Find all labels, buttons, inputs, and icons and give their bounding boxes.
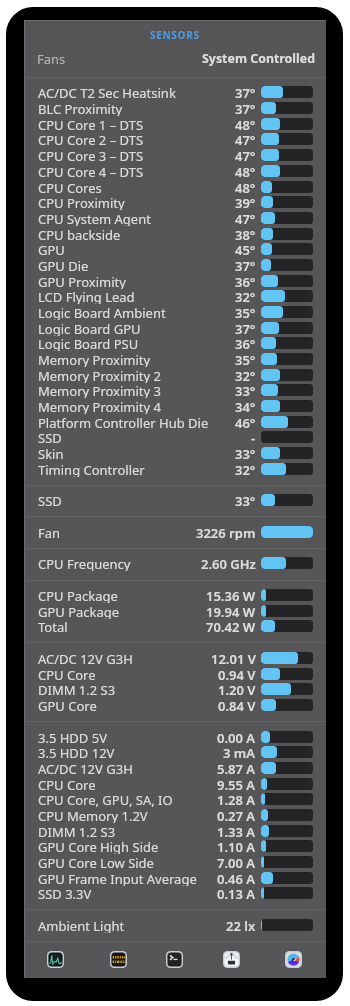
staticText: 15.36 W	[206, 587, 256, 603]
staticText: 39°	[235, 194, 256, 210]
staticText: GPU Die	[38, 257, 89, 273]
staticText: LCD Flying Lead	[38, 288, 135, 304]
button[interactable]: CPU Core 2 – DTS	[24, 131, 326, 147]
button[interactable]: CPU Memory 1.2V	[24, 807, 326, 823]
button[interactable]: Total	[24, 618, 326, 634]
button[interactable]: 3.5 HDD 12V	[24, 744, 326, 760]
staticText: 0.13 A	[217, 885, 256, 901]
button[interactable]: Timing Controller	[24, 461, 326, 477]
button[interactable]: CPU Package	[24, 587, 326, 603]
staticText: CPU Core	[38, 666, 96, 682]
button[interactable]: DIMM 1.2 S3	[24, 823, 326, 839]
staticText: CPU Memory 1.2V	[38, 807, 148, 823]
button[interactable]: BLC Proximity	[24, 100, 326, 116]
button[interactable]: GPU Core Low Side	[24, 854, 326, 870]
button[interactable]: AirPort Utility	[223, 951, 240, 968]
button[interactable]: Browser	[285, 951, 302, 968]
staticText: 47°	[235, 131, 256, 147]
button[interactable]: GPU Core	[24, 697, 326, 713]
staticText: CPU Frequency	[38, 555, 131, 571]
staticText: AC/DC T2 Sec Heatsink	[38, 84, 176, 100]
staticText: 9.55 A	[217, 776, 256, 792]
staticText: Ambient Light	[38, 917, 125, 933]
staticText: DIMM 1.2 S3	[38, 681, 116, 697]
staticText: AC/DC 12V G3H	[38, 650, 133, 666]
button[interactable]: CPU Core 1 – DTS	[24, 116, 326, 132]
button[interactable]: CPU Proximity	[24, 194, 326, 210]
staticText: Total	[38, 618, 68, 634]
button[interactable]: Logic Board GPU	[24, 320, 326, 336]
staticText: Logic Board PSU	[38, 335, 139, 351]
button[interactable]: Logic Board PSU	[24, 335, 326, 351]
staticText: 0.46 A	[217, 870, 256, 886]
staticText: -	[251, 429, 256, 445]
staticText: 0.00 A	[217, 729, 256, 745]
button[interactable]: CPU Core 4 – DTS	[24, 163, 326, 179]
button[interactable]: 3.5 HDD 5V	[24, 729, 326, 745]
button[interactable]: Skin	[24, 445, 326, 461]
button[interactable]: System Monitor	[47, 951, 64, 968]
button[interactable]: CPU backside	[24, 226, 326, 242]
staticText: GPU Package	[38, 603, 120, 619]
button[interactable]: GPU Die	[24, 257, 326, 273]
button[interactable]: GPU Proximity	[24, 273, 326, 289]
button[interactable]: CPU Core 3 – DTS	[24, 147, 326, 163]
staticText: CPU Core 3 – DTS	[38, 147, 144, 163]
button[interactable]: Fan	[24, 524, 326, 540]
staticText: Skin	[38, 445, 64, 461]
button[interactable]: CPU System Agent	[24, 210, 326, 226]
button[interactable]: Ambient Light	[24, 917, 326, 933]
staticText: Logic Board GPU	[38, 320, 141, 336]
staticText: 33°	[235, 445, 256, 461]
button[interactable]: AC/DC 12V G3H	[24, 760, 326, 776]
button[interactable]: GPU Core High Side	[24, 838, 326, 854]
button[interactable]: SSD	[24, 492, 326, 508]
button[interactable]: Memory Proximity 4	[24, 398, 326, 414]
button[interactable]: CPU Core, GPU, SA, IO	[24, 791, 326, 807]
staticText: CPU Core 2 – DTS	[38, 131, 144, 147]
button[interactable]: SSD	[24, 429, 326, 445]
button[interactable]: GPU Package	[24, 603, 326, 619]
button[interactable]: DIMM 1.2 S3	[24, 681, 326, 697]
button[interactable]: GPU	[24, 241, 326, 257]
staticText: 46°	[235, 414, 256, 430]
staticText: 3 mA	[223, 744, 256, 760]
staticText: 19.94 W	[206, 603, 256, 619]
staticText: 0.84 V	[218, 697, 256, 713]
button[interactable]: CPU Frequency	[24, 555, 326, 571]
button[interactable]: Stock ticker	[110, 951, 127, 968]
staticText: Fans	[37, 50, 66, 66]
staticText: 37°	[235, 320, 256, 336]
staticText: CPU Proximity	[38, 194, 125, 210]
button[interactable]: SSD 3.3V	[24, 885, 326, 901]
staticText: SENSORS	[150, 28, 200, 42]
staticText: 3226 rpm	[196, 524, 256, 540]
button[interactable]: CPU Core	[24, 666, 326, 682]
button[interactable]: CPU Cores	[24, 179, 326, 195]
staticText: CPU Package	[38, 587, 118, 603]
staticText: GPU Frame Input Average	[38, 870, 197, 886]
staticText: 7.00 A	[217, 854, 256, 870]
button[interactable]: AC/DC 12V G3H	[24, 650, 326, 666]
button[interactable]: Memory Proximity 2	[24, 367, 326, 383]
staticText: SSD	[38, 492, 62, 508]
button[interactable]: CPU Core	[24, 776, 326, 792]
button[interactable]: Terminal	[166, 951, 183, 968]
staticText: SSD 3.3V	[38, 885, 92, 901]
staticText: DIMM 1.2 S3	[38, 823, 116, 839]
button[interactable]: Platform Controller Hub Die	[24, 414, 326, 430]
staticText: 48°	[235, 116, 256, 132]
button[interactable]: AC/DC T2 Sec Heatsink	[24, 84, 326, 100]
button[interactable]: Memory Proximity	[24, 351, 326, 367]
staticText: 32°	[235, 288, 256, 304]
button[interactable]: Logic Board Ambient	[24, 304, 326, 320]
button[interactable]: GPU Frame Input Average	[24, 870, 326, 886]
button[interactable]: Memory Proximity 3	[24, 382, 326, 398]
staticText: 33°	[235, 382, 256, 398]
staticText: 12.01 V	[211, 650, 256, 666]
staticText: 48°	[235, 179, 256, 195]
staticText: CPU backside	[38, 226, 121, 242]
staticText: 36°	[235, 335, 256, 351]
button[interactable]: LCD Flying Lead	[24, 288, 326, 304]
staticText: 22 lx	[226, 917, 256, 933]
